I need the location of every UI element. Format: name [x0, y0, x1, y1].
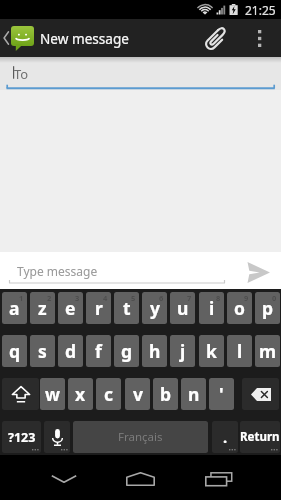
- staticText: a: [9, 296, 20, 320]
- staticText: Français: [118, 429, 163, 445]
- staticText: f: [95, 339, 102, 363]
- button[interactable]: r: [86, 292, 111, 324]
- staticText: To: [14, 65, 29, 83]
- button[interactable]: m: [255, 335, 280, 367]
- staticText: y: [150, 296, 160, 320]
- staticText: 21:25: [245, 2, 276, 18]
- staticText: .: [223, 427, 228, 447]
- staticText: b: [160, 382, 172, 406]
- button[interactable]: New message: [0, 19, 129, 57]
- button[interactable]: b: [153, 378, 178, 410]
- button[interactable]: s: [30, 335, 55, 367]
- button[interactable]: c: [96, 378, 121, 410]
- staticText: ': [219, 382, 224, 406]
- button[interactable]: Voice input: [44, 421, 70, 453]
- button[interactable]: l: [227, 335, 252, 367]
- button[interactable]: g: [114, 335, 139, 367]
- button[interactable]: x: [68, 378, 93, 410]
- button[interactable]: Shift: [2, 378, 39, 410]
- button[interactable]: Backspace: [242, 378, 279, 410]
- staticText: u: [177, 296, 189, 320]
- staticText: s: [38, 339, 47, 363]
- staticText: q: [9, 339, 21, 363]
- staticText: o: [234, 296, 245, 320]
- staticText: m: [259, 339, 277, 363]
- button[interactable]: ': [209, 378, 234, 410]
- staticText: 8: [216, 293, 221, 303]
- staticText: n: [188, 382, 200, 406]
- staticText: ?123: [8, 429, 36, 446]
- staticText: 5: [131, 293, 136, 303]
- staticText: k: [206, 339, 217, 363]
- button[interactable]: u: [170, 292, 195, 324]
- staticText: t: [123, 296, 131, 320]
- button[interactable]: p: [255, 292, 280, 324]
- staticText: h: [149, 339, 161, 363]
- staticText: x: [75, 382, 86, 406]
- staticText: c: [104, 382, 114, 406]
- staticText: 1: [19, 293, 24, 303]
- button[interactable]: h: [142, 335, 167, 367]
- staticText: 2: [47, 293, 52, 303]
- button[interactable]: k: [199, 335, 224, 367]
- button[interactable]: q: [2, 335, 27, 367]
- staticText: d: [65, 339, 77, 363]
- button[interactable]: Send: [235, 252, 281, 289]
- button[interactable]: v: [125, 378, 150, 410]
- button[interactable]: n: [181, 378, 206, 410]
- staticText: 6: [159, 293, 164, 303]
- button[interactable]: Recent apps: [179, 455, 258, 500]
- button[interactable]: j: [170, 335, 195, 367]
- button[interactable]: a: [2, 292, 27, 324]
- button[interactable]: Français: [73, 421, 208, 453]
- button[interactable]: .: [212, 421, 238, 453]
- staticText: e: [65, 296, 76, 320]
- staticText: New message: [40, 29, 129, 48]
- button[interactable]: z: [30, 292, 55, 324]
- staticText: 4: [103, 293, 108, 303]
- button[interactable]: More options: [237, 19, 281, 57]
- staticText: 7: [187, 293, 192, 303]
- staticText: z: [38, 296, 47, 320]
- button[interactable]: o: [227, 292, 252, 324]
- button[interactable]: t: [114, 292, 139, 324]
- button[interactable]: ?123: [2, 421, 41, 453]
- button[interactable]: y: [142, 292, 167, 324]
- button[interactable]: Hide keyboard: [24, 455, 103, 500]
- staticText: v: [133, 382, 143, 406]
- button[interactable]: i: [199, 292, 224, 324]
- staticText: i: [209, 296, 215, 320]
- button[interactable]: d: [58, 335, 83, 367]
- staticText: j: [180, 339, 186, 363]
- button[interactable]: Home: [101, 455, 180, 500]
- staticText: Type message: [17, 263, 98, 279]
- staticText: 0: [272, 293, 277, 303]
- button[interactable]: Return: [240, 421, 280, 453]
- staticText: l: [237, 339, 243, 363]
- staticText: Return: [240, 429, 280, 445]
- button[interactable]: f: [86, 335, 111, 367]
- button[interactable]: Attach: [194, 19, 237, 57]
- staticText: g: [121, 339, 133, 363]
- staticText: 9: [244, 293, 249, 303]
- staticText: p: [262, 296, 274, 320]
- button[interactable]: e: [58, 292, 83, 324]
- staticText: 3: [75, 293, 80, 303]
- button[interactable]: w: [40, 378, 65, 410]
- staticText: w: [45, 382, 60, 406]
- staticText: r: [95, 296, 103, 320]
